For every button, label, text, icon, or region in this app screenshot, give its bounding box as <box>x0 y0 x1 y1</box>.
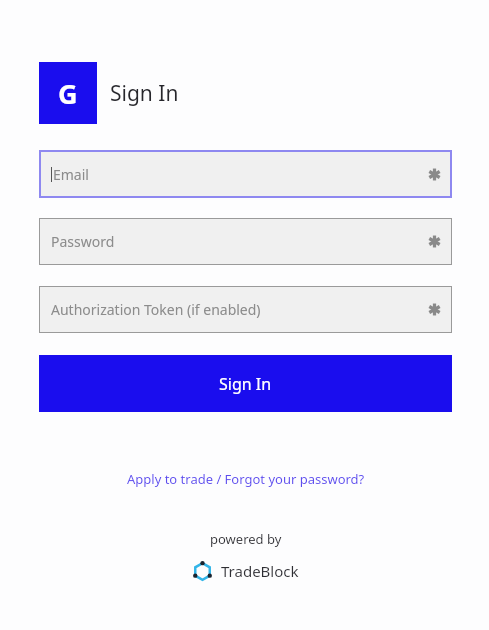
button[interactable]: Email <box>39 150 452 198</box>
staticText: Sign In <box>219 373 272 395</box>
staticText: powered by <box>210 530 282 548</box>
button[interactable]: Sign In <box>39 355 452 412</box>
other: Gemini logo <box>39 62 97 124</box>
staticText: G <box>58 75 78 112</box>
staticText: Password <box>51 232 428 251</box>
staticText: TradeBlock <box>221 561 299 581</box>
staticText: Apply to trade / Forgot your password? <box>127 470 365 488</box>
staticText: Authorization Token (if enabled) <box>51 300 428 319</box>
button[interactable]: Authorization Token (if enabled) <box>39 286 452 333</box>
button[interactable]: TradeBlock <box>189 559 303 583</box>
staticText: Sign In <box>110 79 179 108</box>
button[interactable]: Apply to trade / Forgot your password? <box>121 466 371 492</box>
staticText: Email <box>53 165 428 184</box>
button[interactable]: Password <box>39 218 452 265</box>
